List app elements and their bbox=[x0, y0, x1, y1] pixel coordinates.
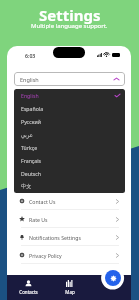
staticText: Española bbox=[21, 105, 44, 112]
button[interactable]: 中文 bbox=[14, 180, 125, 193]
staticText: Русский bbox=[21, 118, 41, 125]
staticText: 6:03 bbox=[25, 52, 36, 59]
staticText: Rate Us bbox=[29, 216, 48, 223]
button[interactable]: Settings bbox=[105, 270, 121, 286]
button[interactable]: Notifications Settings bbox=[7, 228, 131, 246]
button[interactable]: Contact Us bbox=[7, 192, 131, 210]
staticText: Türkçe bbox=[21, 144, 38, 151]
button[interactable]: Français bbox=[14, 154, 125, 167]
button[interactable]: Deutsch bbox=[14, 167, 125, 180]
staticText: Contacts bbox=[19, 289, 38, 295]
staticText: 中文 bbox=[21, 183, 32, 190]
staticText: English bbox=[20, 76, 39, 83]
button[interactable]: Map bbox=[49, 280, 90, 295]
button[interactable]: Türkçe bbox=[14, 141, 125, 154]
button[interactable]: عربي bbox=[14, 128, 125, 141]
staticText: Deutsch bbox=[21, 170, 41, 177]
button[interactable]: Rate Us bbox=[7, 210, 131, 228]
button[interactable]: Española bbox=[14, 102, 125, 115]
staticText: Français bbox=[21, 157, 42, 164]
staticText: Contact Us bbox=[29, 198, 56, 205]
button[interactable]: English bbox=[14, 72, 125, 86]
button[interactable]: Русский bbox=[14, 115, 125, 128]
staticText: Map bbox=[65, 289, 75, 295]
staticText: عربي bbox=[21, 132, 33, 138]
staticText: Settings bbox=[39, 5, 101, 25]
button[interactable]: Privacy Policy bbox=[7, 246, 131, 264]
button[interactable]: English bbox=[14, 89, 125, 102]
staticText: Notifications Settings bbox=[29, 234, 81, 241]
button[interactable]: Contacts bbox=[7, 280, 49, 295]
staticText: English bbox=[21, 92, 39, 99]
staticText: Multiple language support. bbox=[31, 22, 108, 30]
staticText: Privacy Policy bbox=[29, 252, 62, 259]
